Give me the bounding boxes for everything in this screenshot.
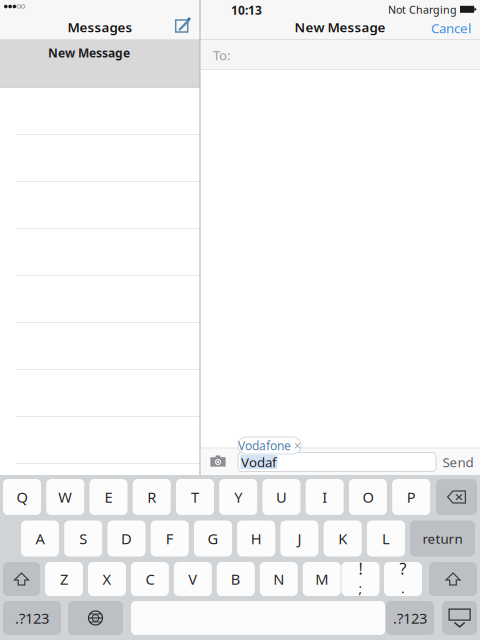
staticText: ! [358, 558, 362, 579]
staticText: Cancel [431, 19, 471, 37]
staticText: .?123 [15, 608, 49, 628]
staticText: F [166, 529, 174, 548]
button[interactable]: Z [45, 562, 83, 596]
staticText: Messages [67, 18, 132, 36]
staticText: To: [213, 46, 231, 64]
staticText: B [231, 569, 241, 589]
staticText: O [362, 487, 373, 507]
staticText: T [191, 487, 199, 507]
staticText: 10:13 [231, 2, 262, 18]
button[interactable]: Cancel [428, 18, 474, 38]
button[interactable]: New Message [0, 40, 200, 87]
staticText: New Message [294, 18, 385, 36]
staticText: ? [399, 558, 406, 579]
button[interactable]: Compose [175, 17, 191, 33]
staticText: I [322, 487, 327, 507]
button[interactable]: L [367, 520, 405, 556]
button[interactable]: I [306, 479, 344, 515]
button[interactable]: O [349, 479, 387, 515]
staticText: X [102, 569, 111, 589]
staticText: Q [16, 487, 27, 507]
button[interactable]: V [174, 562, 212, 596]
button[interactable]: G [194, 520, 232, 556]
staticText: G [207, 529, 218, 548]
staticText: .?123 [393, 608, 427, 628]
button[interactable]: E [89, 479, 127, 515]
button[interactable]: B [217, 562, 255, 596]
staticText: A [35, 529, 44, 548]
button[interactable]: Y [219, 479, 257, 515]
button[interactable] [429, 562, 477, 596]
staticText: J [297, 529, 301, 548]
staticText: P [407, 487, 416, 507]
button[interactable]: .?123 [3, 601, 61, 635]
button[interactable]: Q [3, 479, 41, 515]
staticText: Z [60, 569, 68, 589]
staticText: Y [234, 487, 242, 507]
button[interactable]: R [133, 479, 171, 515]
button[interactable] [68, 601, 123, 635]
staticText: Send [442, 453, 473, 471]
button[interactable]: Send [438, 453, 478, 471]
staticText: N [273, 569, 284, 589]
button[interactable]: ? [384, 562, 422, 596]
button[interactable]: T [176, 479, 214, 515]
button[interactable]: F [151, 520, 189, 556]
button[interactable]: X [88, 562, 126, 596]
staticText: U [276, 487, 287, 507]
button[interactable] [436, 479, 477, 515]
staticText: Vodafone [238, 437, 291, 453]
button[interactable]: Camera [210, 455, 226, 467]
button[interactable] [442, 601, 477, 635]
staticText: × [294, 437, 301, 453]
staticText: return [422, 530, 462, 547]
staticText: R [147, 487, 156, 507]
staticText: M [315, 569, 328, 589]
button[interactable]: U [262, 479, 300, 515]
button[interactable]: C [131, 562, 169, 596]
staticText: S [79, 529, 87, 548]
staticText: Vodaf [241, 453, 277, 471]
staticText: Not Charging [388, 2, 457, 17]
button[interactable]: .?123 [386, 601, 434, 635]
button[interactable]: J [280, 520, 318, 556]
button[interactable]: N [260, 562, 298, 596]
button[interactable]: K [324, 520, 362, 556]
staticText: D [121, 529, 132, 548]
staticText: ; [358, 579, 362, 597]
button[interactable]: H [237, 520, 275, 556]
button[interactable]: M [303, 562, 341, 596]
staticText: L [382, 529, 390, 548]
staticText: New Message [48, 45, 130, 61]
button[interactable]: W [46, 479, 84, 515]
staticText: H [251, 529, 262, 548]
staticText: C [145, 569, 154, 589]
button[interactable]: D [107, 520, 145, 556]
button[interactable]: S [64, 520, 102, 556]
button[interactable] [3, 562, 40, 596]
button[interactable]: Vodafone [238, 437, 301, 454]
staticText: W [58, 487, 72, 507]
button[interactable]: P [392, 479, 430, 515]
staticText: K [338, 529, 347, 548]
staticText: E [104, 487, 112, 507]
staticText: V [188, 569, 197, 589]
button[interactable]: return [410, 520, 475, 556]
staticText: . [401, 579, 405, 597]
button[interactable]: ! [341, 562, 379, 596]
button[interactable]: A [21, 520, 59, 556]
